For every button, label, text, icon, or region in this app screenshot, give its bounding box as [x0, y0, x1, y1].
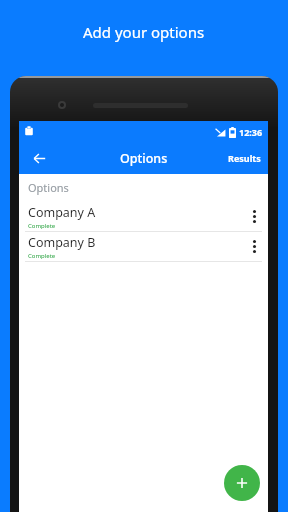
staticText: 12:36: [239, 126, 263, 138]
button[interactable]: Company A: [19, 202, 268, 231]
staticText: Complete: [28, 252, 56, 260]
button[interactable]: Add option: [224, 465, 260, 501]
staticText: Options: [120, 150, 168, 167]
staticText: Add your options: [83, 22, 205, 42]
button[interactable]: Back: [19, 142, 59, 174]
button[interactable]: More options: [244, 202, 264, 231]
button[interactable]: Results: [221, 142, 268, 174]
staticText: Company B: [28, 234, 96, 251]
staticText: Complete: [28, 222, 56, 230]
button[interactable]: More options: [244, 232, 264, 261]
staticText: Results: [228, 152, 261, 164]
button[interactable]: Company B: [19, 232, 268, 261]
staticText: Options: [28, 180, 69, 195]
staticText: Company A: [28, 204, 96, 221]
